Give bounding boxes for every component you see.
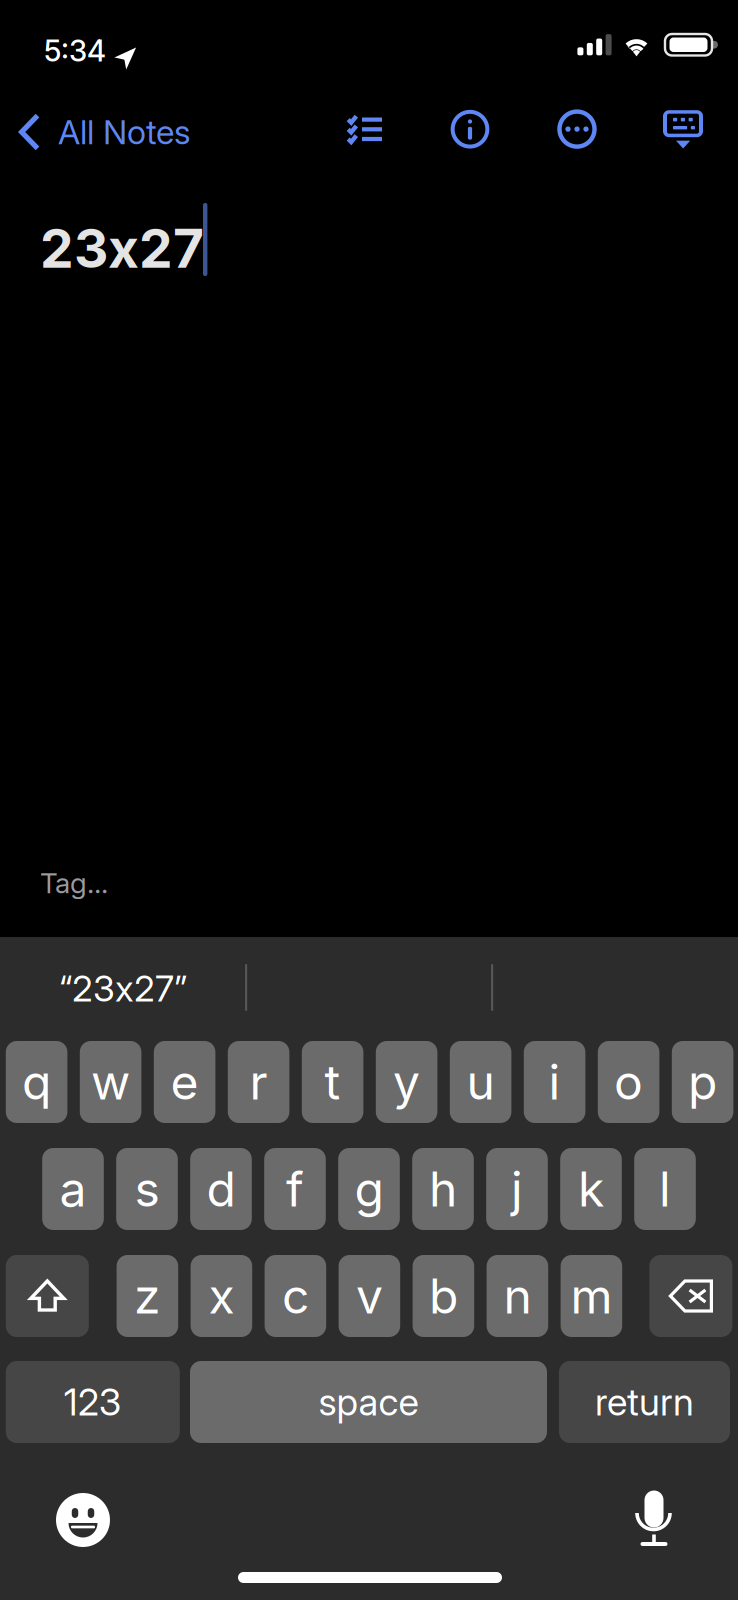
button[interactable]: g — [338, 1148, 400, 1230]
button[interactable]: x — [191, 1255, 252, 1337]
button[interactable]: w — [80, 1041, 141, 1123]
staticText: u — [467, 1053, 495, 1111]
button[interactable]: “23 — [0, 937, 246, 1040]
staticText: b — [429, 1267, 458, 1325]
button[interactable]: return — [559, 1361, 730, 1443]
button[interactable]: b — [413, 1255, 474, 1337]
button[interactable]: y — [376, 1041, 437, 1123]
staticText: All Notes — [58, 112, 191, 152]
staticText: t — [325, 1053, 341, 1111]
staticText: space — [318, 1379, 418, 1425]
button[interactable]: Hide keyboard — [641, 94, 725, 170]
staticText: k — [578, 1160, 604, 1218]
button[interactable]: Info — [428, 94, 512, 170]
staticText: z — [134, 1267, 161, 1325]
staticText: h — [429, 1160, 457, 1218]
button[interactable]: t — [302, 1041, 363, 1123]
staticText: x — [115, 967, 134, 1010]
button[interactable]: l — [634, 1148, 696, 1230]
staticText: c — [282, 1267, 309, 1325]
button[interactable]: r — [228, 1041, 289, 1123]
button[interactable]: Dictate — [610, 1477, 698, 1561]
staticText: 23 — [40, 216, 108, 280]
staticText: j — [511, 1160, 523, 1218]
button[interactable]: More — [535, 94, 619, 170]
staticText: 5:34 — [44, 33, 106, 68]
staticText: q — [22, 1053, 51, 1111]
button[interactable]: n — [487, 1255, 548, 1337]
staticText: r — [250, 1053, 268, 1111]
button[interactable]: c — [265, 1255, 326, 1337]
button[interactable]: All Notes — [0, 94, 207, 170]
button[interactable]: z — [117, 1255, 178, 1337]
button[interactable]: Emoji — [39, 1478, 127, 1562]
staticText: v — [356, 1267, 383, 1325]
button[interactable]: Shift — [6, 1255, 89, 1337]
staticText: l — [659, 1160, 671, 1218]
staticText: 27 — [139, 216, 204, 280]
button[interactable]: f — [264, 1148, 326, 1230]
staticText: p — [688, 1053, 717, 1111]
staticText: o — [614, 1053, 643, 1111]
button[interactable]: d — [190, 1148, 252, 1230]
button[interactable]: s — [116, 1148, 178, 1230]
button[interactable]: u — [450, 1041, 511, 1123]
staticText: n — [503, 1267, 531, 1325]
staticText: “23 — [59, 967, 115, 1010]
staticText: f — [286, 1160, 304, 1218]
staticText: 27” — [134, 967, 187, 1010]
button[interactable]: k — [560, 1148, 622, 1230]
button[interactable]: Checklist — [322, 94, 406, 170]
staticText: y — [393, 1053, 420, 1111]
button[interactable]: v — [339, 1255, 400, 1337]
staticText: 123 — [64, 1379, 122, 1425]
staticText: x — [208, 1267, 234, 1325]
staticText: w — [91, 1053, 130, 1111]
staticText: d — [206, 1160, 235, 1218]
staticText: x — [108, 216, 139, 280]
button[interactable]: a — [42, 1148, 104, 1230]
button[interactable]: q — [6, 1041, 67, 1123]
staticText: s — [134, 1160, 159, 1218]
button[interactable]: m — [561, 1255, 622, 1337]
button[interactable]: 123 — [6, 1361, 180, 1443]
staticText: i — [549, 1053, 561, 1111]
button[interactable]: p — [672, 1041, 733, 1123]
button[interactable]: i — [524, 1041, 585, 1123]
staticText: m — [570, 1267, 612, 1325]
staticText: e — [171, 1053, 199, 1111]
button[interactable]: j — [486, 1148, 548, 1230]
staticText: a — [59, 1160, 86, 1218]
staticText: Tag... — [40, 866, 108, 900]
staticText: g — [354, 1160, 383, 1218]
button[interactable]: o — [598, 1041, 659, 1123]
button[interactable]: Delete — [649, 1255, 732, 1337]
button[interactable]: h — [412, 1148, 474, 1230]
button[interactable]: space — [190, 1361, 547, 1443]
staticText: return — [595, 1379, 694, 1425]
button[interactable]: e — [154, 1041, 215, 1123]
